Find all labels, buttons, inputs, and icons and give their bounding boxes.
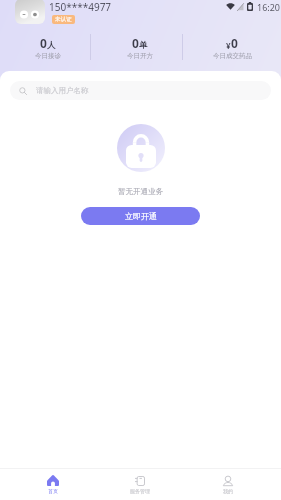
button[interactable]: 首页: [9, 469, 96, 500]
staticText: 立即开通: [125, 211, 157, 221]
button[interactable]: 立即开通: [81, 207, 200, 225]
staticText: 首页: [48, 488, 58, 494]
staticText: 今日接诊: [35, 52, 61, 60]
staticText: 今日开方: [127, 52, 153, 60]
staticText: 今日成交药品: [213, 52, 252, 60]
staticText: 16:20: [257, 1, 281, 13]
staticText: 0: [231, 35, 238, 51]
button[interactable]: 0: [94, 33, 186, 61]
button[interactable]: 服务管理: [96, 469, 184, 500]
staticText: 0: [132, 35, 139, 51]
button[interactable]: 请输入用户名称: [10, 81, 271, 100]
button[interactable]: ¥: [186, 33, 278, 61]
staticText: 150****4977: [49, 0, 112, 14]
button[interactable]: 0: [2, 33, 94, 61]
staticText: 暂无开通业务: [118, 187, 163, 196]
staticText: 未认证: [55, 16, 72, 23]
staticText: 0: [40, 35, 47, 51]
staticText: 服务管理: [130, 488, 150, 494]
staticText: 请输入用户名称: [36, 86, 89, 95]
staticText: 我的: [223, 488, 233, 494]
staticText: 单: [139, 40, 148, 51]
staticText: 人: [47, 40, 56, 51]
staticText: ¥: [226, 40, 231, 51]
button[interactable]: 我的: [184, 469, 272, 500]
